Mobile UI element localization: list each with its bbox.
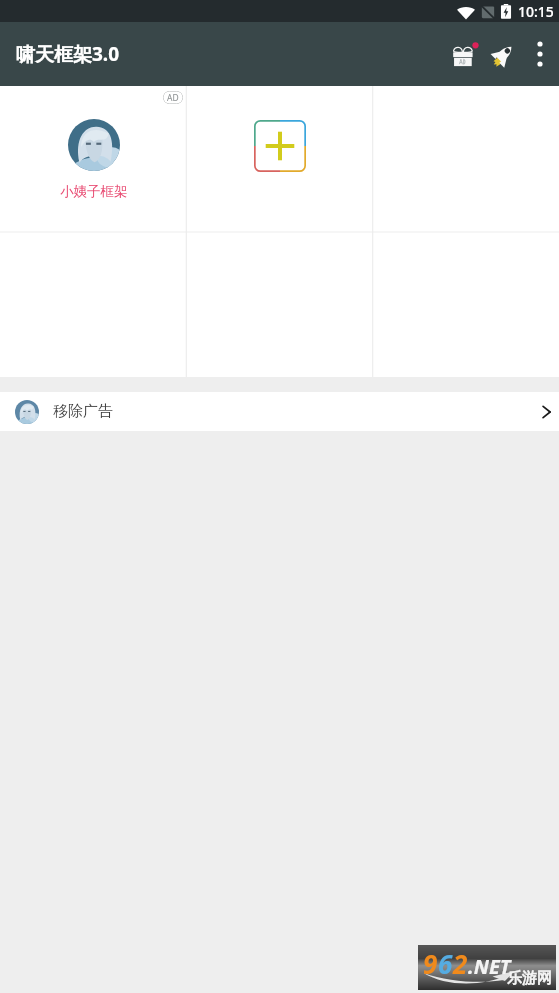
staticText: 10:15 xyxy=(518,2,554,21)
button[interactable]: 移除广告 xyxy=(0,392,559,431)
staticText: 移除广告 xyxy=(53,402,113,421)
staticText: 9 xyxy=(423,946,438,981)
staticText: 啸天框架3.0 xyxy=(16,41,120,67)
button[interactable]: Boost xyxy=(484,36,521,73)
staticText: 6 xyxy=(438,946,453,981)
other: Open xyxy=(540,405,554,419)
button[interactable]: Add app xyxy=(187,86,373,232)
staticText: .NET xyxy=(468,953,511,980)
staticText: AD xyxy=(167,92,179,104)
staticText: 小姨子框架 xyxy=(60,183,128,200)
staticText: 2 xyxy=(453,946,468,981)
button[interactable]: 小姨子框架 xyxy=(0,86,187,232)
button[interactable]: Gift ad xyxy=(447,36,484,73)
button[interactable]: More options xyxy=(521,22,559,86)
staticText: 乐游网 xyxy=(507,969,552,988)
